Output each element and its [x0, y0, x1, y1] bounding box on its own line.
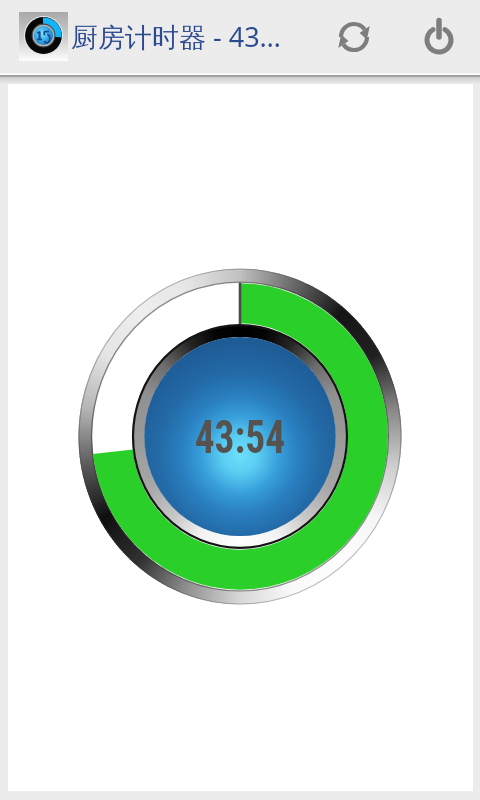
button[interactable]: Power — [408, 6, 470, 68]
button[interactable]: Timer 43:54 — [79, 269, 401, 604]
staticText: 厨房计时器 - 43… — [71, 18, 281, 55]
staticText: 43:54 — [195, 409, 285, 464]
button[interactable]: Reset timer — [323, 6, 385, 68]
